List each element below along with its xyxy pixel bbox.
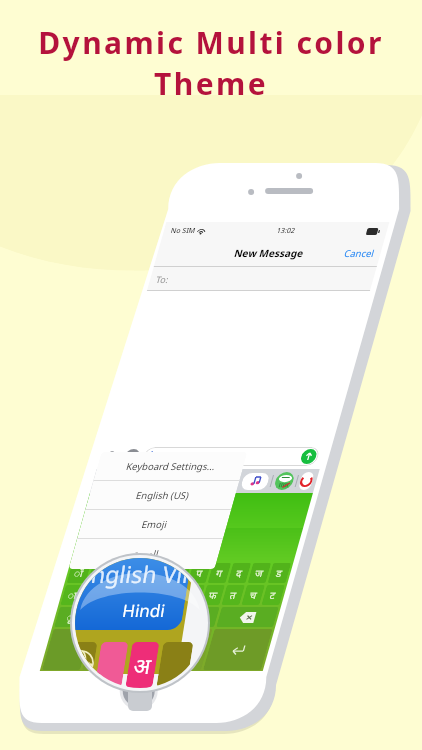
button[interactable]: English (US) — [183, 481, 329, 509]
button[interactable] — [225, 629, 344, 670]
staticText: न — [249, 610, 255, 624]
button[interactable]: ब — [246, 585, 264, 605]
button[interactable]: अ — [122, 642, 149, 688]
button[interactable]: ् — [246, 563, 264, 583]
staticText: English (US) — [230, 489, 283, 502]
staticText: Cancel — [370, 247, 400, 260]
button[interactable]: ि — [266, 563, 284, 583]
staticText: Hinglish Vinglish — [75, 558, 168, 589]
button[interactable]: Music — [332, 473, 358, 490]
button[interactable]: ा — [185, 585, 204, 605]
button[interactable]: ृ — [185, 607, 210, 627]
button[interactable]: ू — [226, 585, 244, 605]
button[interactable]: العربية — [183, 539, 329, 568]
button[interactable]: Camera — [188, 449, 203, 464]
button[interactable] — [91, 642, 118, 688]
staticText: ल — [275, 610, 282, 624]
button[interactable]: Hinglish Vinglish — [75, 558, 168, 630]
button[interactable]: क — [266, 585, 284, 605]
button[interactable]: ं — [212, 607, 237, 627]
button[interactable]: ी — [206, 585, 224, 605]
button[interactable]: Emoji — [185, 629, 223, 670]
button[interactable]: Cancel — [370, 247, 400, 260]
staticText: ब — [252, 588, 258, 602]
staticText: ी — [211, 588, 220, 602]
button[interactable]: Emoji — [183, 510, 329, 538]
staticText: Keyboard Settings... — [212, 460, 301, 473]
staticText: Hindi — [107, 599, 150, 622]
staticText: अ — [127, 650, 144, 680]
button[interactable]: ो — [206, 563, 224, 583]
staticText: ॉ — [190, 566, 199, 580]
staticText: Emoji — [244, 518, 269, 531]
button[interactable]: ु — [286, 563, 304, 583]
staticText: ो — [211, 566, 220, 580]
staticText: े — [232, 566, 238, 580]
button[interactable]: े — [226, 563, 244, 583]
button[interactable]: Send — [226, 447, 401, 466]
staticText: New Message — [260, 246, 329, 260]
button[interactable]: न — [239, 607, 264, 627]
button[interactable]: Keyboard Settings... — [183, 452, 329, 480]
button[interactable]: स — [293, 607, 318, 627]
button[interactable]: ॉ — [185, 563, 204, 583]
staticText: ि — [271, 566, 280, 580]
staticText: ु — [292, 566, 298, 580]
staticText: ा — [190, 588, 199, 602]
staticText: Theme — [154, 63, 268, 104]
button[interactable]: प — [306, 563, 324, 583]
button[interactable]: Globe — [75, 642, 87, 688]
button[interactable] — [153, 642, 183, 688]
staticText: No SIM — [190, 226, 215, 236]
staticText: ू — [232, 588, 238, 602]
staticText: Dynamic Multi color — [38, 22, 384, 63]
staticText: ् — [252, 566, 258, 580]
staticText: क — [271, 588, 279, 602]
button[interactable]: म — [286, 585, 304, 605]
button[interactable]: ल — [266, 607, 291, 627]
